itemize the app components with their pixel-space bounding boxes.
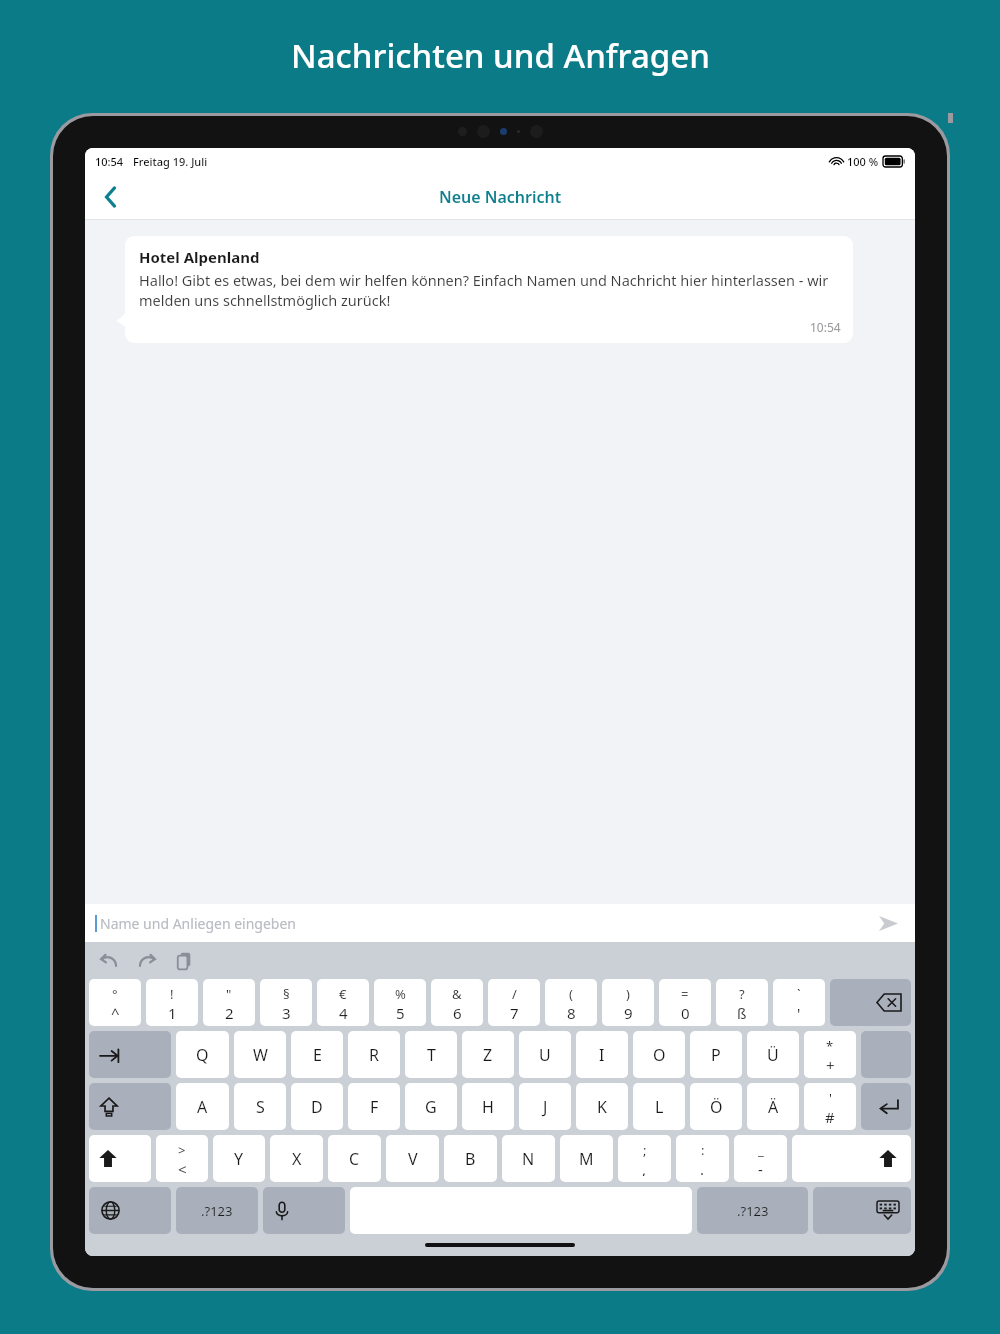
button[interactable]: Ü [747, 1031, 799, 1078]
button[interactable]: W [234, 1031, 286, 1078]
staticText: C [349, 1148, 360, 1170]
staticText: N [522, 1148, 535, 1170]
staticText: 0 [681, 1003, 690, 1020]
button[interactable]: E [291, 1031, 343, 1078]
staticText: B [465, 1148, 476, 1170]
staticText: V [408, 1148, 418, 1170]
button[interactable]: = [659, 979, 711, 1026]
button[interactable]: R [348, 1031, 400, 1078]
button[interactable]: I [576, 1031, 628, 1078]
button[interactable]: ; [618, 1135, 671, 1182]
button[interactable]: Feststelltaste [89, 1083, 171, 1130]
button[interactable]: H [462, 1083, 514, 1130]
staticText: ? [739, 985, 745, 1003]
staticText: 10:54 [810, 319, 841, 335]
button[interactable]: Umschalttaste [89, 1135, 151, 1182]
button[interactable]: S [234, 1083, 286, 1130]
button[interactable]: Ö [690, 1083, 742, 1130]
button[interactable]: / [488, 979, 540, 1026]
button[interactable]: U [519, 1031, 571, 1078]
button[interactable]: .?123 [176, 1187, 258, 1234]
staticText: 2 [225, 1003, 234, 1020]
staticText: H [482, 1096, 494, 1118]
staticText: W [253, 1044, 268, 1066]
button[interactable]: Z [462, 1031, 514, 1078]
staticText: ' [829, 1089, 832, 1107]
button[interactable]: ` [773, 979, 825, 1026]
button[interactable]: Rücktaste [830, 979, 911, 1026]
button[interactable]: V [386, 1135, 439, 1182]
staticText: P [711, 1044, 721, 1066]
staticText: M [579, 1148, 594, 1170]
button[interactable]: ° [89, 979, 141, 1026]
button[interactable]: F [348, 1083, 400, 1130]
staticText: % [395, 985, 406, 1003]
button[interactable]: O [633, 1031, 685, 1078]
button[interactable]: " [203, 979, 255, 1026]
button[interactable]: X [270, 1135, 323, 1182]
button[interactable]: Ä [747, 1083, 799, 1130]
staticText: Nachrichten und Anfragen [291, 33, 710, 78]
button[interactable]: ? [716, 979, 768, 1026]
button[interactable]: Eingabetaste [861, 1083, 911, 1130]
button[interactable]: § [260, 979, 312, 1026]
button[interactable]: L [633, 1083, 685, 1130]
button[interactable]: N [502, 1135, 555, 1182]
button[interactable]: T [405, 1031, 457, 1078]
button[interactable]: * [804, 1031, 856, 1078]
button[interactable]: > [156, 1135, 208, 1182]
button[interactable]: Q [176, 1031, 229, 1078]
button[interactable]: C [328, 1135, 381, 1182]
staticText: ^ [111, 1003, 120, 1020]
staticText: E [313, 1044, 322, 1066]
staticText: I [599, 1044, 605, 1066]
button[interactable]: B [444, 1135, 497, 1182]
button[interactable]: Einfügen [171, 947, 199, 975]
staticText: 6 [453, 1003, 462, 1020]
button[interactable]: .?123 [697, 1187, 808, 1234]
staticText: 4 [339, 1003, 348, 1020]
button[interactable]: J [519, 1083, 571, 1130]
staticText: ! [170, 985, 174, 1003]
button[interactable]: ! [146, 979, 198, 1026]
button[interactable]: K [576, 1083, 628, 1130]
staticText: & [452, 985, 462, 1003]
button[interactable]: & [431, 979, 483, 1026]
staticText: Hotel Alpenland [139, 247, 260, 267]
staticText: X [292, 1148, 302, 1170]
button[interactable]: Tabulator [89, 1031, 171, 1078]
staticText: G [425, 1096, 437, 1118]
staticText: 10:54 [95, 154, 124, 169]
staticText: R [369, 1044, 379, 1066]
button[interactable]: ' [804, 1083, 856, 1130]
button[interactable]: Senden [871, 906, 905, 940]
button[interactable]: Y [213, 1135, 265, 1182]
button[interactable]: _ [734, 1135, 787, 1182]
button[interactable]: A [176, 1083, 229, 1130]
button[interactable]: Sprache wechseln [89, 1187, 171, 1234]
button[interactable]: ( [545, 979, 597, 1026]
button[interactable]: € [317, 979, 369, 1026]
button[interactable]: Tastatur ausblenden [813, 1187, 911, 1234]
button[interactable]: P [690, 1031, 742, 1078]
button[interactable]: M [560, 1135, 613, 1182]
button[interactable]: Hotel Alpenland [125, 236, 853, 343]
button[interactable]: ) [602, 979, 654, 1026]
button[interactable]: Wiederholen [133, 947, 161, 975]
staticText: 9 [624, 1003, 633, 1020]
staticText: D [311, 1096, 323, 1118]
button[interactable]: : [676, 1135, 729, 1182]
button[interactable]: Diktieren [263, 1187, 345, 1234]
button[interactable]: G [405, 1083, 457, 1130]
button[interactable]: % [374, 979, 426, 1026]
staticText: # [825, 1107, 835, 1124]
button[interactable]: Rückgängig [95, 947, 123, 975]
button[interactable]: D [291, 1083, 343, 1130]
staticText: " [226, 985, 232, 1003]
staticText: 7 [510, 1003, 519, 1020]
button[interactable]: Umschalttaste [792, 1135, 911, 1182]
button[interactable]: Zurück [89, 175, 133, 219]
staticText: ° [112, 985, 118, 1003]
